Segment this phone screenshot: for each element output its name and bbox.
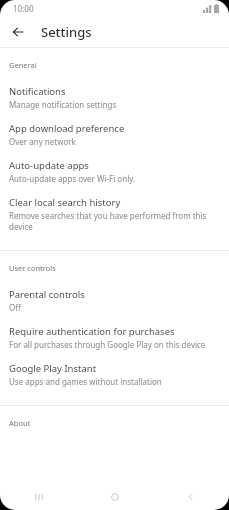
- staticText: About: [9, 418, 31, 428]
- staticText: Over any network: [9, 136, 76, 147]
- button[interactable]: Auto-update apps: [0, 154, 229, 191]
- staticText: Use apps and games without installation: [9, 376, 162, 387]
- button[interactable]: Parental controls: [0, 283, 229, 320]
- staticText: 10:00: [13, 3, 34, 14]
- staticText: Clear local search history: [9, 196, 121, 209]
- button[interactable]: Clear local search history: [0, 191, 229, 239]
- staticText: User controls: [9, 263, 56, 273]
- button[interactable]: Require authentication for purchases: [0, 320, 229, 357]
- staticText: General: [9, 60, 37, 70]
- staticText: Notifications: [9, 85, 66, 98]
- staticText: Google Play Instant: [9, 362, 97, 375]
- staticText: Settings: [41, 23, 92, 41]
- button[interactable]: Recents: [0, 483, 77, 510]
- staticText: Auto-update apps: [9, 159, 89, 172]
- staticText: Off: [9, 302, 21, 313]
- staticText: Require authentication for purchases: [9, 325, 175, 338]
- button[interactable]: Back: [7, 21, 29, 43]
- staticText: Parental controls: [9, 288, 85, 301]
- button[interactable]: Home: [77, 483, 153, 510]
- button[interactable]: Notifications: [0, 80, 229, 117]
- staticText: For all purchases through Google Play on…: [9, 339, 206, 350]
- staticText: Auto-update apps over Wi-Fi only.: [9, 173, 136, 184]
- button[interactable]: Back: [153, 483, 229, 510]
- staticText: Manage notification settings: [9, 99, 117, 110]
- staticText: Remove searches that you have performed …: [9, 210, 215, 232]
- button[interactable]: App download preference: [0, 117, 229, 154]
- button[interactable]: Google Play Instant: [0, 357, 229, 394]
- staticText: App download preference: [9, 122, 125, 135]
